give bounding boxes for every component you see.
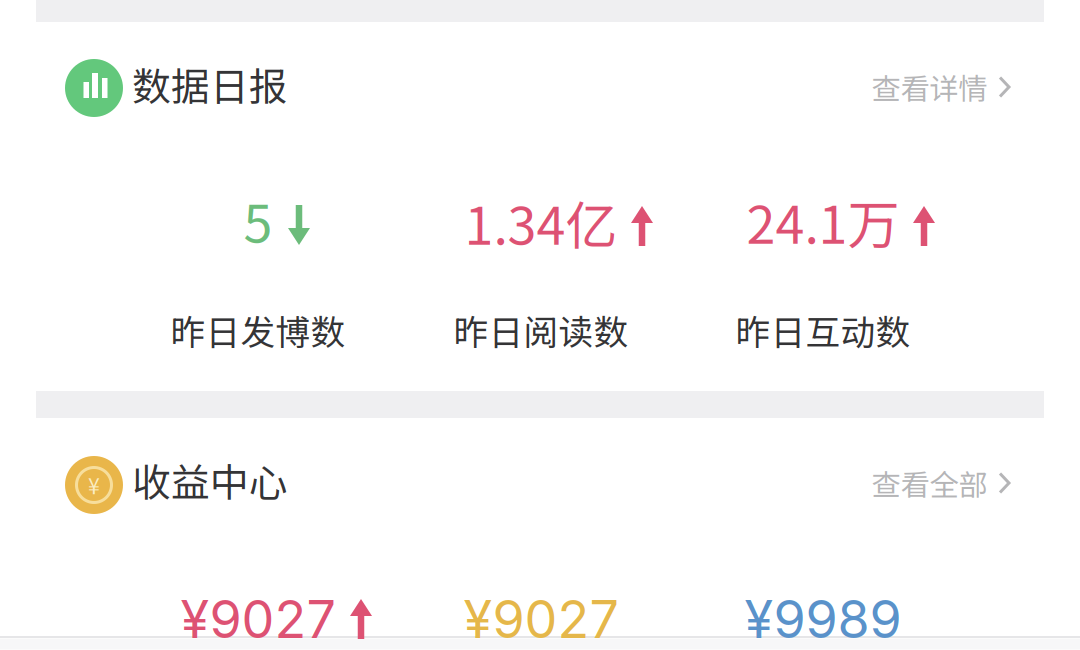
button[interactable] [699, 571, 967, 650]
staticText: 昨日互动数 [735, 305, 910, 355]
staticText: 数据日报 [132, 56, 288, 112]
button[interactable]: ¥ [50, 441, 280, 519]
button[interactable]: 数据日报 [50, 45, 280, 123]
button[interactable] [417, 571, 685, 650]
staticText: ¥9989 [744, 587, 901, 650]
button[interactable]: 查看全部 [865, 450, 1016, 516]
staticText: ¥9027 [180, 587, 335, 650]
staticText: 1.34亿 [464, 184, 617, 260]
staticText: 昨日阅读数 [453, 305, 628, 355]
staticText: 5 [243, 182, 272, 258]
button[interactable]: 查看详情 [865, 54, 1016, 120]
button[interactable] [699, 186, 967, 364]
staticText: 24.1万 [746, 183, 899, 259]
staticText: 昨日发博数 [170, 305, 345, 355]
button[interactable] [417, 187, 685, 365]
staticText: ¥9027 [463, 587, 618, 650]
button[interactable] [134, 571, 402, 650]
button[interactable] [134, 186, 402, 364]
staticText: ¥ [88, 470, 100, 500]
staticText: 查看全部 [871, 462, 987, 504]
staticText: 收益中心 [132, 452, 288, 508]
staticText: 查看详情 [871, 66, 987, 108]
